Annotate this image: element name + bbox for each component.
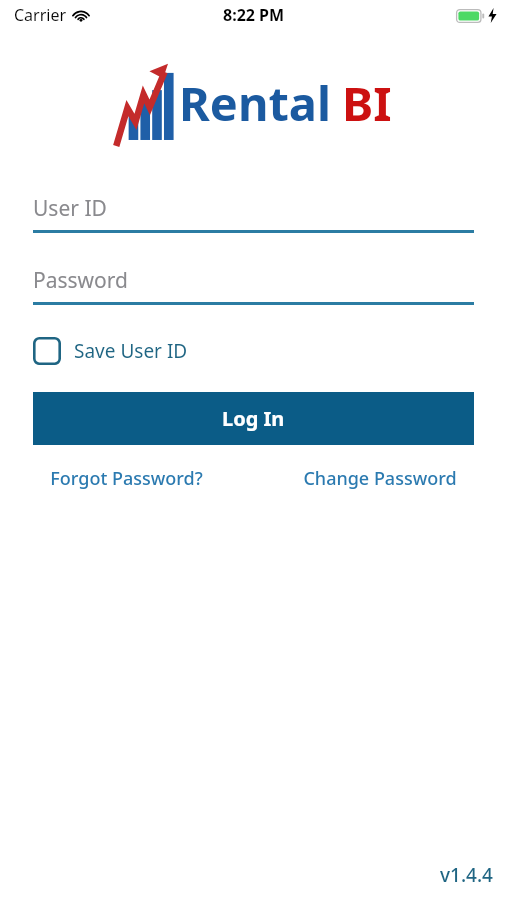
button[interactable]: User ID	[33, 191, 474, 225]
staticText: Change Password	[303, 466, 457, 491]
button[interactable]: Forgot Password?	[0, 460, 253, 496]
staticText: BI	[342, 71, 392, 135]
staticText: User ID	[33, 194, 107, 223]
staticText: Rental	[179, 71, 331, 135]
staticText: v1.4.4	[440, 862, 493, 888]
button[interactable]: Change Password	[253, 460, 507, 496]
button[interactable]: Log In	[33, 392, 474, 445]
button[interactable]: Save User ID	[33, 331, 188, 371]
staticText: Forgot Password?	[50, 466, 203, 491]
button[interactable]: Password	[33, 263, 474, 297]
staticText: Password	[33, 266, 128, 295]
staticText: 8:22 PM	[223, 4, 285, 26]
staticText: Carrier	[14, 4, 67, 26]
staticText: Save User ID	[74, 338, 188, 364]
staticText: Log In	[222, 405, 285, 432]
